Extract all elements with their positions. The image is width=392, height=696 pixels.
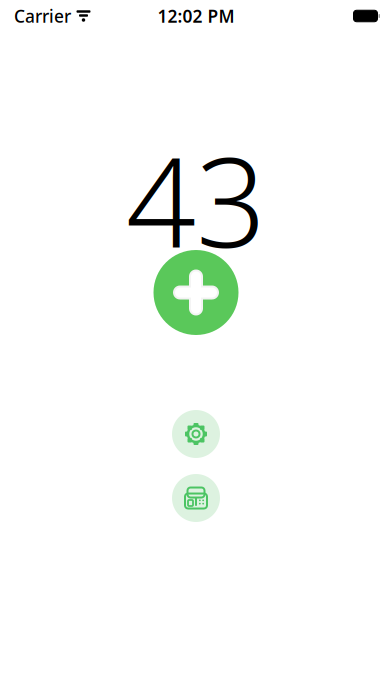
staticText: 43: [126, 119, 266, 281]
staticText: Carrier: [14, 4, 71, 27]
staticText: 12:02 PM: [157, 4, 234, 27]
button[interactable]: Settings: [172, 410, 220, 458]
button[interactable]: Items: [172, 474, 220, 522]
button[interactable]: Add: [153, 250, 238, 335]
